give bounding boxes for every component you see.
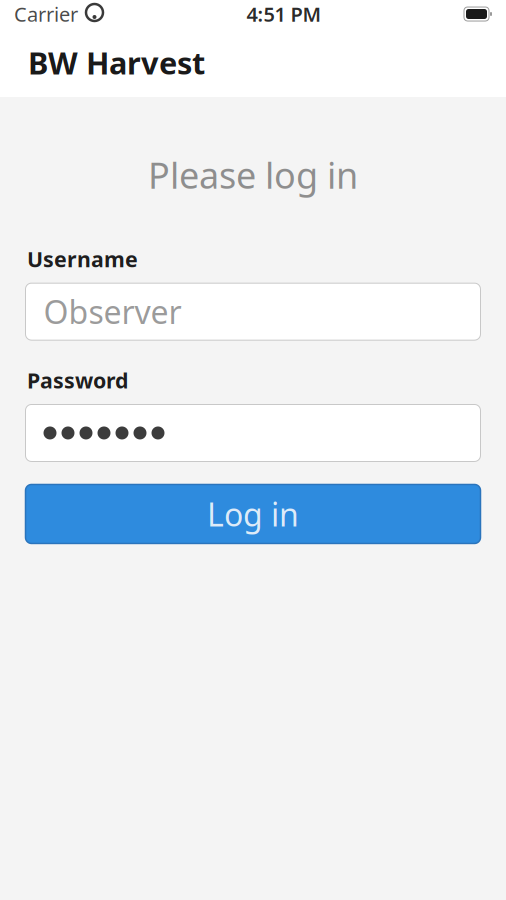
staticText: 4:51 PM	[246, 1, 321, 27]
staticText: Carrier	[14, 1, 78, 27]
staticText: Log in	[207, 493, 299, 535]
staticText: Please log in	[148, 151, 358, 199]
staticText: Username	[27, 245, 138, 273]
staticText: Observer	[43, 290, 181, 333]
staticText: Password	[27, 366, 128, 394]
button[interactable]: Log in	[25, 484, 480, 543]
staticText: BW Harvest	[28, 42, 205, 83]
